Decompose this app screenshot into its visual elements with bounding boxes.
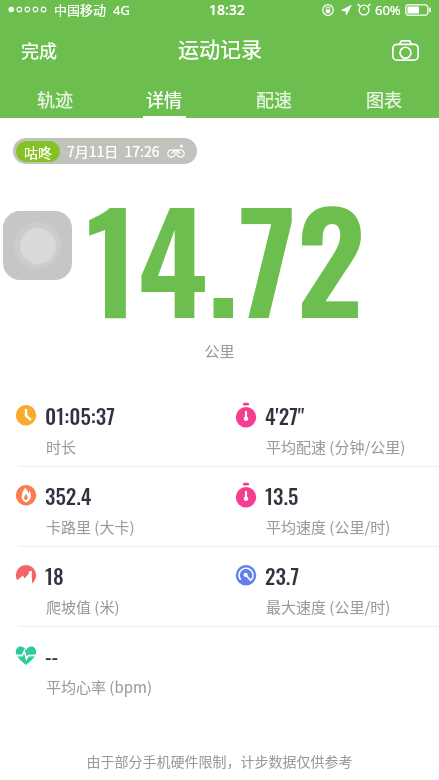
button[interactable]: --	[0, 627, 220, 707]
staticText: 完成	[21, 37, 57, 63]
button[interactable]: 咕咚	[13, 138, 197, 164]
staticText: 详情	[146, 86, 182, 112]
button[interactable]: 配速	[219, 77, 329, 118]
staticText: 最大速度 (公里/时)	[266, 596, 391, 618]
button[interactable]: 18	[0, 547, 220, 627]
staticText: 配速	[256, 86, 292, 112]
button[interactable]: 4'27"	[220, 387, 439, 467]
staticText: 图表	[366, 86, 402, 112]
staticText: 18:32	[209, 0, 245, 19]
staticText: 公里	[0, 340, 439, 362]
staticText: 由于部分手机硬件限制，计步数据仅供参考	[0, 751, 439, 771]
staticText: 卡路里 (大卡)	[46, 516, 135, 538]
staticText: 轨迹	[37, 86, 73, 112]
staticText: 352.4	[45, 480, 92, 511]
staticText: 13.5	[265, 480, 299, 511]
staticText: 平均配速 (分钟/公里)	[266, 436, 406, 458]
staticText: 18	[45, 560, 64, 591]
staticText: 60%	[375, 1, 401, 19]
button[interactable]: Camera	[376, 29, 439, 75]
button[interactable]: 完成	[0, 27, 75, 77]
staticText: 时长	[46, 436, 77, 458]
staticText: 咕咚	[24, 142, 52, 162]
button[interactable]: 23.7	[220, 547, 439, 627]
staticText: 4'27"	[265, 400, 305, 431]
staticText: 4G	[113, 1, 130, 19]
staticText: 中国移动	[54, 0, 107, 19]
button[interactable]: 轨迹	[0, 77, 109, 118]
staticText: 01:05:37	[45, 400, 115, 431]
button[interactable]: 13.5	[220, 467, 439, 547]
staticText: 爬坡值 (米)	[46, 596, 120, 618]
button[interactable]: 详情	[109, 77, 219, 118]
staticText: 23.7	[265, 560, 300, 591]
staticText: --	[45, 640, 59, 671]
staticText: 14.72	[86, 157, 365, 357]
button[interactable]: 352.4	[0, 467, 220, 547]
button[interactable]: 01:05:37	[0, 387, 220, 467]
staticText: 平均速度 (公里/时)	[266, 516, 391, 538]
staticText: 7月11日 17:26	[67, 141, 160, 161]
staticText: 平均心率 (bpm)	[46, 676, 152, 698]
staticText: 运动记录	[178, 33, 262, 63]
button[interactable]: 图表	[329, 77, 439, 118]
